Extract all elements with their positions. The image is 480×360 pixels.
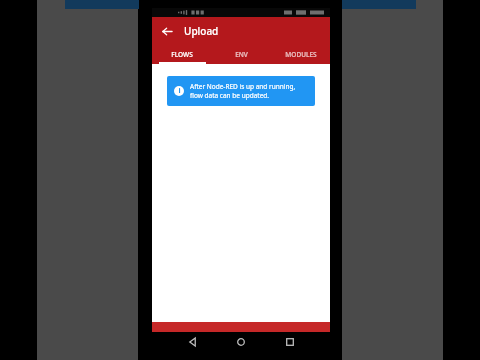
button[interactable]: MODULES [271,44,330,64]
button[interactable]: Back [185,334,201,350]
button[interactable]: Home [233,334,249,350]
button[interactable]: FLOWS [152,44,212,64]
staticText: MODULES [285,50,317,59]
button[interactable]: Recents [282,334,298,350]
staticText: i [178,86,181,96]
button[interactable]: ENV [212,44,271,64]
staticText: Upload [184,24,219,38]
button[interactable]: i [167,76,315,106]
button[interactable]: Back [157,21,177,41]
staticText: ENV [235,50,248,59]
staticText: FLOWS [171,50,193,59]
staticText: After Node-RED is up and running, flow d… [190,82,308,100]
